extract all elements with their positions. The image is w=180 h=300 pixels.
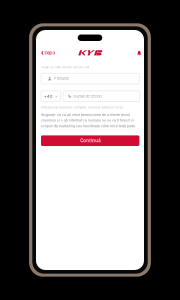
staticText: Asigurați-vă că ați cerut permisiunea de… [41,113,136,128]
staticText: Număr de telefon [73,94,101,99]
button[interactable]: Notificări [135,49,143,57]
staticText: Introduceți numărul complet, inclusiv pr… [41,106,123,109]
staticText: +40 [44,94,52,99]
button[interactable]: Continuă [41,135,139,146]
staticText: Prenume [54,76,69,81]
staticText: Continuă [80,138,100,143]
staticText: Creați un SMS pentru clientul dvs [41,66,89,69]
staticText: Înapoi [44,50,55,55]
button[interactable]: Înapoi [40,49,57,57]
